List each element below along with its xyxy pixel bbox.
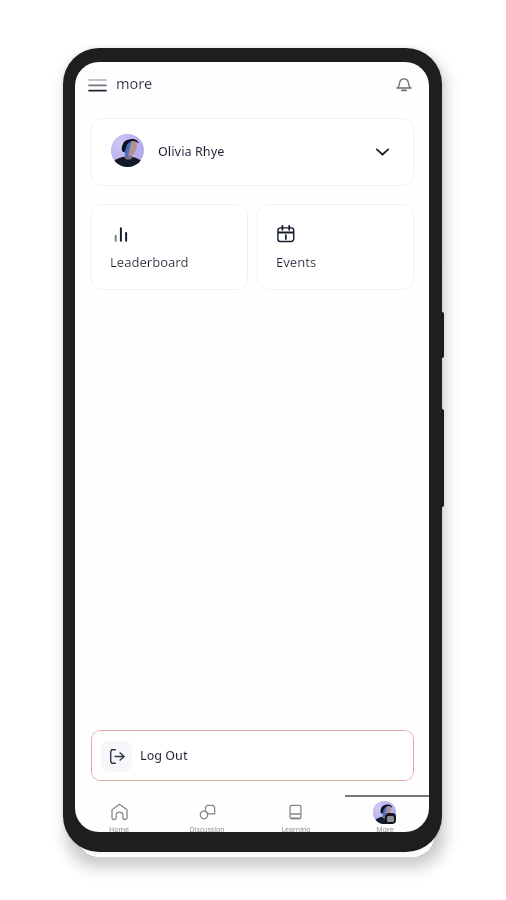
button[interactable]: Olivia Rhye — [91, 118, 414, 186]
button[interactable]: Menu — [81, 69, 113, 101]
staticText: Discussion — [189, 825, 225, 832]
staticText: Events — [276, 253, 317, 271]
staticText: Leaderboard — [110, 253, 189, 271]
button[interactable]: Events — [257, 204, 414, 290]
button[interactable]: Learning — [251, 792, 340, 832]
staticText: More — [376, 825, 394, 832]
staticText: Olivia Rhye — [158, 143, 225, 160]
button[interactable]: Leaderboard — [91, 204, 248, 290]
button[interactable]: Discussion — [163, 792, 251, 832]
staticText: Learning — [281, 825, 311, 832]
staticText: more — [116, 73, 153, 93]
staticText: Log Out — [140, 747, 188, 764]
button[interactable]: Log Out — [91, 730, 414, 781]
button[interactable]: Notifications — [388, 68, 420, 100]
button[interactable]: More — [340, 792, 429, 832]
button[interactable]: Home — [75, 792, 163, 832]
staticText: Home — [109, 825, 129, 832]
